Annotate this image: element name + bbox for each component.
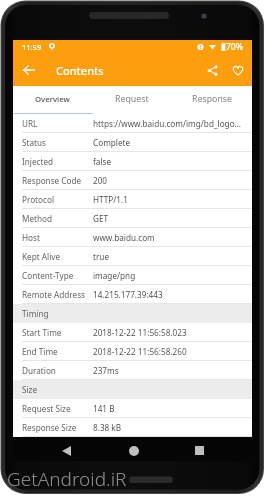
- staticText: GetAndroid.iR: [7, 466, 127, 492]
- button[interactable]: URL: [13, 114, 252, 133]
- staticText: Response Size: [22, 422, 77, 433]
- staticText: Injected: [22, 156, 54, 167]
- staticText: Duration: [22, 365, 56, 376]
- staticText: 70%: [226, 41, 243, 53]
- staticText: Status: [22, 137, 46, 148]
- button[interactable]: Share: [200, 58, 224, 82]
- button[interactable]: Method: [13, 209, 252, 228]
- button[interactable]: Back: [58, 442, 75, 459]
- staticText: image/png: [93, 270, 243, 281]
- button[interactable]: Request: [92, 86, 172, 114]
- staticText: Timing: [22, 308, 49, 319]
- button[interactable]: Recents: [191, 442, 208, 459]
- button[interactable]: Start Time: [13, 323, 252, 342]
- button[interactable]: Response: [172, 86, 252, 114]
- staticText: URL: [22, 118, 38, 129]
- staticText: Method: [22, 213, 53, 224]
- button[interactable]: Host: [13, 228, 252, 247]
- staticText: 2018-12-22 11:56:58.260: [93, 346, 243, 357]
- button[interactable]: Favorite: [226, 58, 250, 82]
- button[interactable]: Content-Type: [13, 266, 252, 285]
- staticText: https://www.baidu.com/img/bd_logo1...: [93, 118, 243, 129]
- staticText: End Time: [22, 346, 58, 357]
- button[interactable]: Back: [17, 58, 41, 82]
- staticText: 141 B: [93, 403, 243, 414]
- staticText: Request: [115, 93, 149, 105]
- staticText: 14.215.177.39:443: [93, 289, 243, 300]
- button[interactable]: Duration: [13, 361, 252, 380]
- staticText: Size: [22, 384, 38, 395]
- button[interactable]: Home: [125, 442, 142, 459]
- staticText: www.baidu.com: [93, 232, 243, 243]
- staticText: Response: [192, 93, 232, 105]
- staticText: 200: [93, 175, 243, 186]
- staticText: 8.38 kB: [93, 422, 243, 433]
- staticText: Contents: [56, 63, 104, 78]
- staticText: Remote Address: [22, 289, 86, 300]
- staticText: Request Size: [22, 403, 71, 414]
- button[interactable]: Status: [13, 133, 252, 152]
- staticText: Kept Alive: [22, 251, 61, 262]
- button[interactable]: Response Code: [13, 171, 252, 190]
- button[interactable]: Protocol: [13, 190, 252, 209]
- staticText: true: [93, 251, 243, 262]
- staticText: Host: [22, 232, 40, 243]
- staticText: 11:59: [22, 42, 42, 52]
- staticText: Protocol: [22, 194, 55, 205]
- button[interactable]: Remote Address: [13, 285, 252, 304]
- button[interactable]: Request Size: [13, 399, 252, 418]
- staticText: Content-Type: [22, 270, 74, 281]
- button[interactable]: Injected: [13, 152, 252, 171]
- button[interactable]: End Time: [13, 342, 252, 361]
- button[interactable]: Overview: [13, 86, 92, 114]
- staticText: 237ms: [93, 365, 243, 376]
- button[interactable]: Response Size: [13, 418, 252, 437]
- staticText: false: [93, 156, 243, 167]
- button[interactable]: Kept Alive: [13, 247, 252, 266]
- staticText: 2018-12-22 11:56:58.023: [93, 327, 243, 338]
- staticText: Response Code: [22, 175, 82, 186]
- staticText: HTTP/1.1: [93, 194, 243, 205]
- staticText: Start Time: [22, 327, 62, 338]
- staticText: Complete: [93, 137, 243, 148]
- staticText: Overview: [35, 94, 70, 105]
- staticText: GET: [93, 213, 243, 224]
